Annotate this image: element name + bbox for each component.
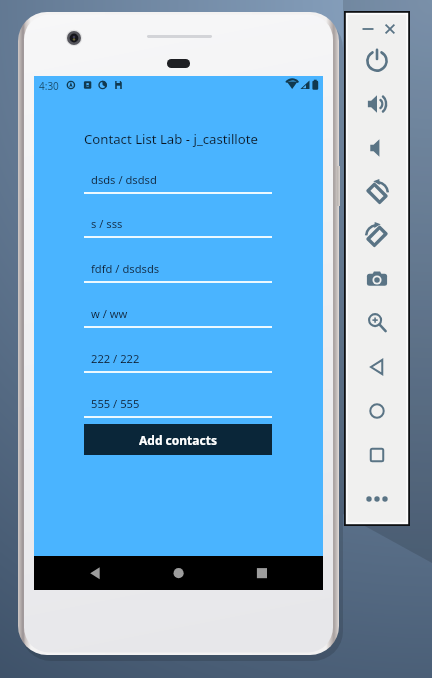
button[interactable]: Recent apps [239, 556, 284, 590]
button[interactable]: Volume up [365, 92, 389, 116]
staticText: 4:30 [39, 79, 59, 93]
button[interactable]: Rotate right [365, 223, 389, 247]
button[interactable]: Add contacts [84, 424, 272, 455]
button[interactable]: w / ww [84, 300, 272, 345]
button[interactable]: Home [156, 556, 201, 590]
button[interactable]: Back [75, 556, 120, 590]
button[interactable]: Rotate left [365, 180, 389, 204]
button[interactable]: Minimize [359, 20, 377, 38]
staticText: w / ww [91, 306, 128, 321]
button[interactable]: s / sss [84, 210, 272, 255]
staticText: Contact List Lab - j_castillote [84, 130, 258, 148]
staticText: fdfd / dsdsds [91, 261, 160, 276]
staticText: dsds / dsdsd [91, 172, 157, 187]
button[interactable]: 222 / 222 [84, 345, 272, 390]
button[interactable]: Back [365, 355, 389, 379]
button[interactable]: dsds / dsdsd [84, 166, 272, 211]
button[interactable]: Close [381, 20, 399, 38]
button[interactable]: More [365, 487, 389, 511]
staticText: 222 / 222 [91, 351, 140, 366]
button[interactable]: Volume down [365, 136, 389, 160]
button[interactable]: Overview [365, 443, 389, 467]
button[interactable]: Power [365, 48, 389, 72]
staticText: 555 / 555 [91, 396, 140, 411]
button[interactable]: 555 / 555 [84, 390, 272, 435]
button[interactable]: Home [365, 399, 389, 423]
staticText: Add contacts [139, 432, 217, 448]
staticText: s / sss [91, 216, 123, 231]
button[interactable]: Zoom [365, 311, 389, 335]
button[interactable]: fdfd / dsdsds [84, 255, 272, 300]
button[interactable]: Take screenshot [365, 267, 389, 291]
